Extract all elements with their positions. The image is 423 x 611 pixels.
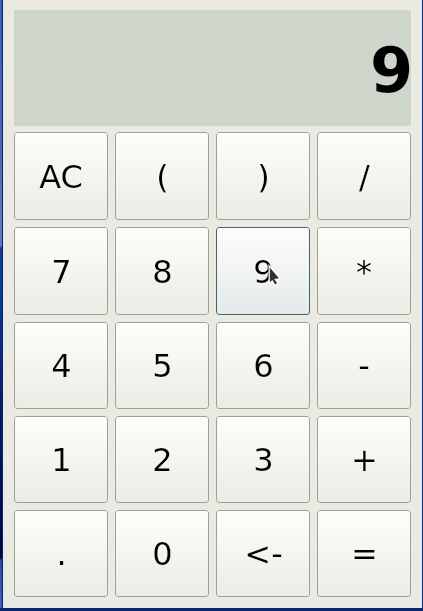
button[interactable]: All clear	[14, 132, 108, 220]
staticText: -	[358, 347, 370, 384]
button[interactable]: One	[14, 416, 108, 503]
button[interactable]: Seven	[14, 227, 108, 315]
staticText: /	[359, 158, 370, 195]
staticText: *	[356, 253, 372, 290]
button[interactable]: Equals	[317, 510, 411, 597]
staticText: 5	[152, 347, 173, 384]
staticText: 3	[253, 441, 274, 478]
button[interactable]: Five	[115, 322, 209, 409]
button[interactable]: Two	[115, 416, 209, 503]
button[interactable]: Three	[216, 416, 310, 503]
staticText: 9	[370, 34, 414, 106]
staticText: )	[257, 158, 270, 195]
button[interactable]: Open parenthesis	[115, 132, 209, 220]
button[interactable]: Six	[216, 322, 310, 409]
staticText: (	[156, 158, 169, 195]
staticText: .	[56, 535, 67, 572]
staticText: <-	[244, 535, 283, 572]
staticText: 8	[152, 253, 173, 290]
button[interactable]: Four	[14, 322, 108, 409]
button[interactable]: Eight	[115, 227, 209, 315]
button[interactable]: Zero	[115, 510, 209, 597]
button[interactable]: Divide	[317, 132, 411, 220]
staticText: 1	[51, 441, 72, 478]
button[interactable]: Multiply	[317, 227, 411, 315]
staticText: 2	[152, 441, 173, 478]
staticText: =	[351, 535, 378, 572]
button[interactable]: Decimal point	[14, 510, 108, 597]
button[interactable]: Backspace	[216, 510, 310, 597]
button[interactable]: Nine	[216, 227, 310, 315]
staticText: 4	[51, 347, 72, 384]
staticText: 9	[253, 253, 274, 290]
staticText: +	[351, 441, 378, 478]
staticText: 0	[152, 535, 173, 572]
button[interactable]: Subtract	[317, 322, 411, 409]
staticText: AC	[39, 158, 83, 195]
staticText: 6	[253, 347, 274, 384]
button[interactable]: Close parenthesis	[216, 132, 310, 220]
button[interactable]: Add	[317, 416, 411, 503]
staticText: 7	[51, 253, 72, 290]
